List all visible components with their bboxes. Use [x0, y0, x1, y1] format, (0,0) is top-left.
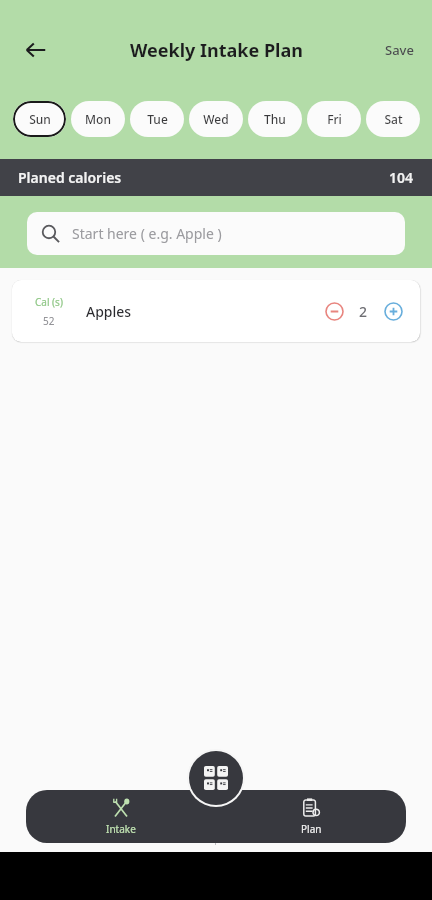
- button[interactable]: Increase quantity: [378, 296, 408, 326]
- button[interactable]: Thu: [248, 101, 302, 137]
- staticText: Wed: [203, 111, 229, 127]
- button[interactable]: Save: [375, 33, 424, 67]
- staticText: 104: [389, 168, 414, 187]
- button[interactable]: Sat: [366, 101, 420, 137]
- button[interactable]: Fri: [307, 101, 361, 137]
- staticText: Plan: [301, 822, 322, 836]
- staticText: 52: [43, 314, 55, 328]
- staticText: Cal (s): [35, 295, 63, 309]
- staticText: Sun: [29, 111, 51, 127]
- button[interactable]: Start here ( e.g. Apple ): [27, 212, 405, 255]
- staticText: Apples: [86, 302, 132, 321]
- staticText: Planed calories: [18, 168, 122, 187]
- staticText: Intake: [106, 822, 136, 836]
- button[interactable]: Cal (s): [12, 280, 420, 342]
- button[interactable]: Plan: [216, 790, 406, 843]
- staticText: Thu: [264, 111, 286, 127]
- staticText: Start here ( e.g. Apple ): [72, 224, 222, 243]
- button[interactable]: Dashboard: [189, 751, 243, 805]
- button[interactable]: Mon: [71, 101, 125, 137]
- button[interactable]: Decrease quantity: [319, 296, 349, 326]
- staticText: Tue: [147, 111, 168, 127]
- button[interactable]: Back: [14, 28, 58, 72]
- staticText: 2: [359, 302, 368, 321]
- button[interactable]: Tue: [130, 101, 184, 137]
- staticText: Mon: [85, 111, 111, 127]
- staticText: Fri: [327, 111, 342, 127]
- button[interactable]: Wed: [189, 101, 243, 137]
- button[interactable]: Sun: [13, 101, 66, 137]
- staticText: Save: [385, 41, 414, 59]
- staticText: Sat: [384, 111, 403, 127]
- staticText: Weekly Intake Plan: [130, 38, 303, 63]
- button[interactable]: Intake: [26, 790, 216, 843]
